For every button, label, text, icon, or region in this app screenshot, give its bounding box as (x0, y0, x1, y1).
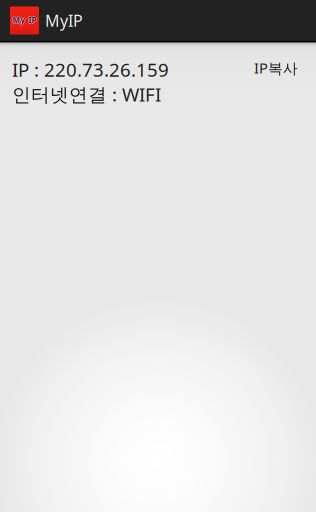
staticText: 인터넷연결 : WIFI (12, 82, 161, 107)
staticText: IP (28, 14, 36, 25)
staticText: MyIP (45, 10, 83, 31)
staticText: My (12, 14, 25, 25)
staticText: IP (29, 15, 37, 25)
staticText: IP : 220.73.26.159 (12, 57, 169, 82)
staticText: My (13, 15, 26, 25)
staticText: IP (28, 15, 36, 25)
button[interactable]: IP복사 (254, 58, 298, 78)
staticText: IP (28, 15, 36, 25)
staticText: My (12, 15, 25, 26)
staticText: IP복사 (254, 58, 298, 78)
staticText: My (12, 15, 25, 25)
staticText: My (12, 15, 25, 25)
staticText: IP (28, 15, 36, 26)
